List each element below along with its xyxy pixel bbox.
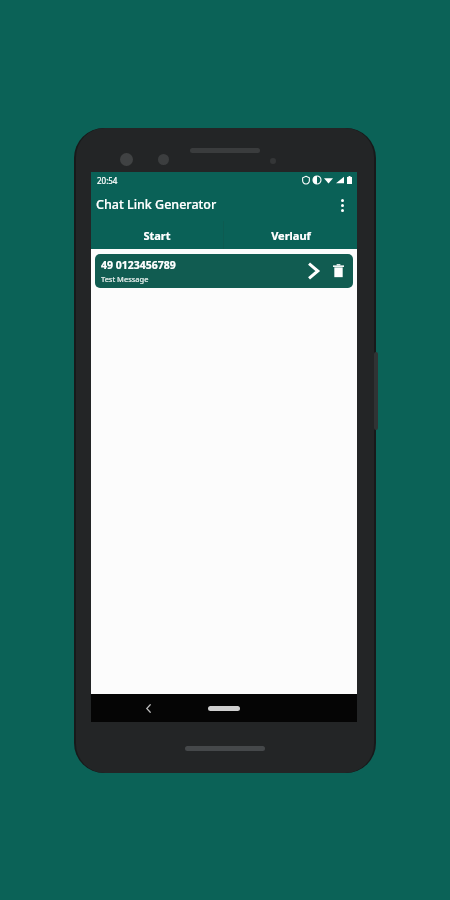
staticText: Start: [143, 228, 171, 243]
button[interactable]: Open chat: [303, 256, 325, 286]
staticText: 49 0123456789: [101, 258, 176, 272]
staticText: Chat Link Generator: [96, 196, 217, 213]
button[interactable]: More options: [327, 190, 357, 220]
button[interactable]: 49 0123456789: [95, 254, 353, 288]
button[interactable]: Delete: [327, 256, 349, 286]
staticText: Test Message: [101, 274, 149, 284]
staticText: 20:54: [97, 175, 118, 186]
button[interactable]: Back: [135, 695, 161, 721]
button[interactable]: Home: [208, 706, 240, 711]
button[interactable]: Verlauf: [224, 221, 357, 249]
button[interactable]: Start: [91, 221, 223, 249]
staticText: Verlauf: [271, 228, 311, 243]
